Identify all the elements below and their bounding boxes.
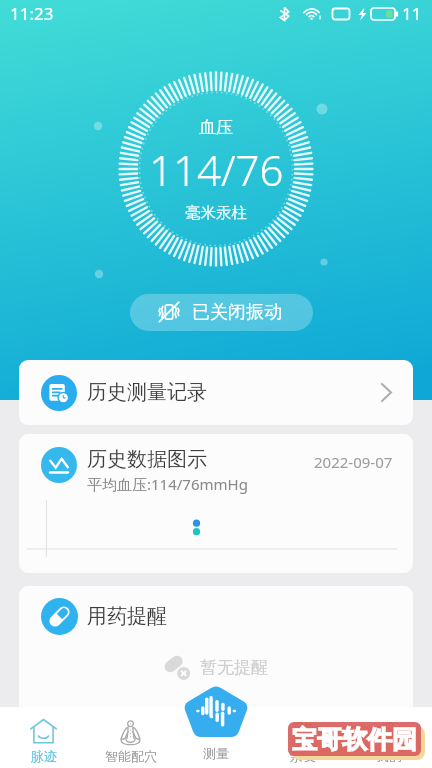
staticText: 2022-09-07 — [314, 452, 393, 472]
staticText: 我的 — [376, 748, 402, 764]
staticText: 平均血压:114/76mmHg — [87, 474, 248, 494]
staticText: 114/76 — [149, 141, 284, 198]
staticText: 用药提醒 — [87, 604, 167, 629]
staticText: 宝哥软件园 — [292, 724, 417, 755]
button[interactable]: 我的 — [346, 707, 432, 764]
button[interactable]: 智能配穴 — [87, 707, 174, 764]
button[interactable]: 已关闭振动 — [130, 294, 313, 331]
staticText: 暂无提醒 — [200, 657, 268, 678]
staticText: 毫米汞柱 — [185, 203, 247, 223]
staticText: 11:23 — [10, 2, 54, 25]
staticText: 测量 — [203, 745, 229, 761]
button[interactable]: 测量 — [183, 685, 249, 737]
button[interactable]: 用药提醒 — [19, 586, 413, 716]
button[interactable]: 脉迹 — [0, 707, 87, 764]
staticText: 亲友 — [290, 748, 316, 764]
staticText: 历史数据图示 — [87, 447, 207, 472]
staticText: 脉迹 — [31, 748, 57, 764]
staticText: 血压 — [199, 117, 233, 138]
button[interactable]: 亲友 — [260, 707, 346, 764]
staticText: 历史测量记录 — [87, 380, 207, 405]
staticText: 11 — [402, 2, 422, 25]
staticText: 智能配穴 — [105, 748, 157, 764]
button[interactable]: 历史数据图示 — [19, 434, 413, 573]
staticText: 已关闭振动 — [192, 301, 282, 324]
button[interactable]: 历史测量记录 — [19, 360, 413, 425]
